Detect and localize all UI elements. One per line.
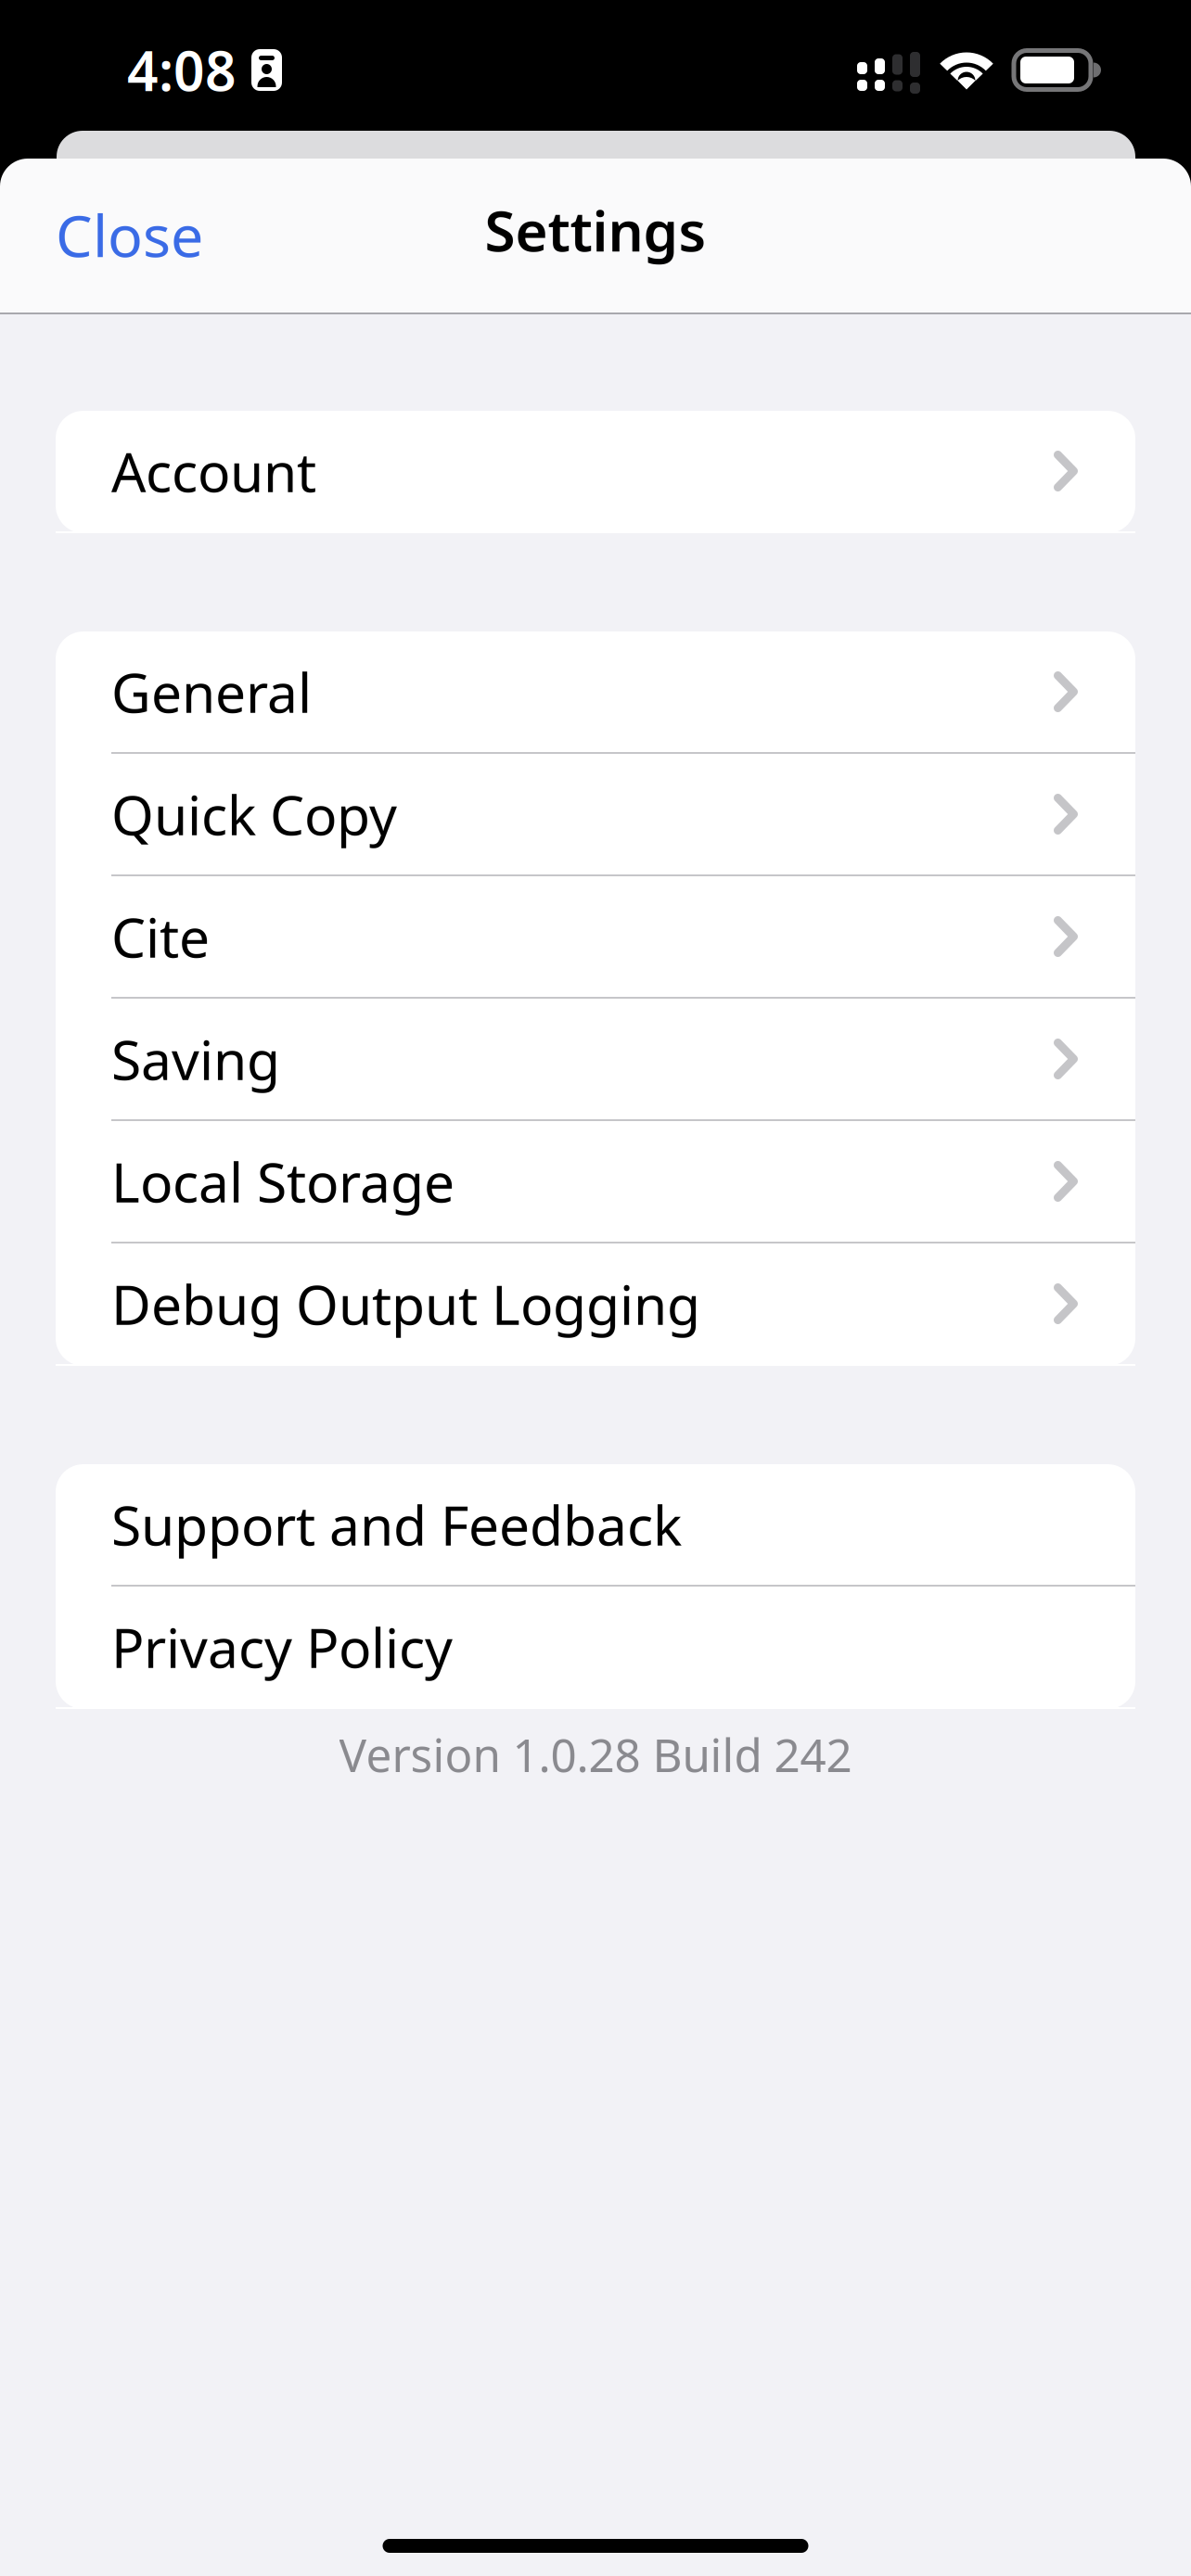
- staticText: Close: [56, 196, 203, 273]
- staticText: Debug Output Logging: [111, 1268, 700, 1340]
- button[interactable]: Support and Feedback: [56, 1464, 1135, 1587]
- button[interactable]: Account: [56, 411, 1135, 533]
- staticText: Saving: [111, 1023, 280, 1095]
- button[interactable]: General: [56, 631, 1135, 754]
- button[interactable]: Close: [56, 173, 225, 287]
- staticText: Quick Copy: [111, 778, 397, 850]
- button[interactable]: Cite: [56, 876, 1135, 999]
- staticText: Cite: [111, 900, 210, 973]
- button[interactable]: Quick Copy: [56, 754, 1135, 876]
- staticText: Support and Feedback: [111, 1488, 682, 1561]
- staticText: Account: [111, 435, 316, 507]
- staticText: Settings: [485, 193, 706, 267]
- button[interactable]: Saving: [56, 999, 1135, 1121]
- staticText: Local Storage: [111, 1145, 455, 1217]
- button[interactable]: Debug Output Logging: [56, 1243, 1135, 1366]
- staticText: General: [111, 656, 312, 728]
- staticText: Version 1.0.28 Build 242: [339, 1724, 852, 1785]
- staticText: Privacy Policy: [111, 1611, 453, 1683]
- button[interactable]: Privacy Policy: [56, 1587, 1135, 1709]
- button[interactable]: Local Storage: [56, 1121, 1135, 1243]
- staticText: 4:08: [127, 34, 237, 106]
